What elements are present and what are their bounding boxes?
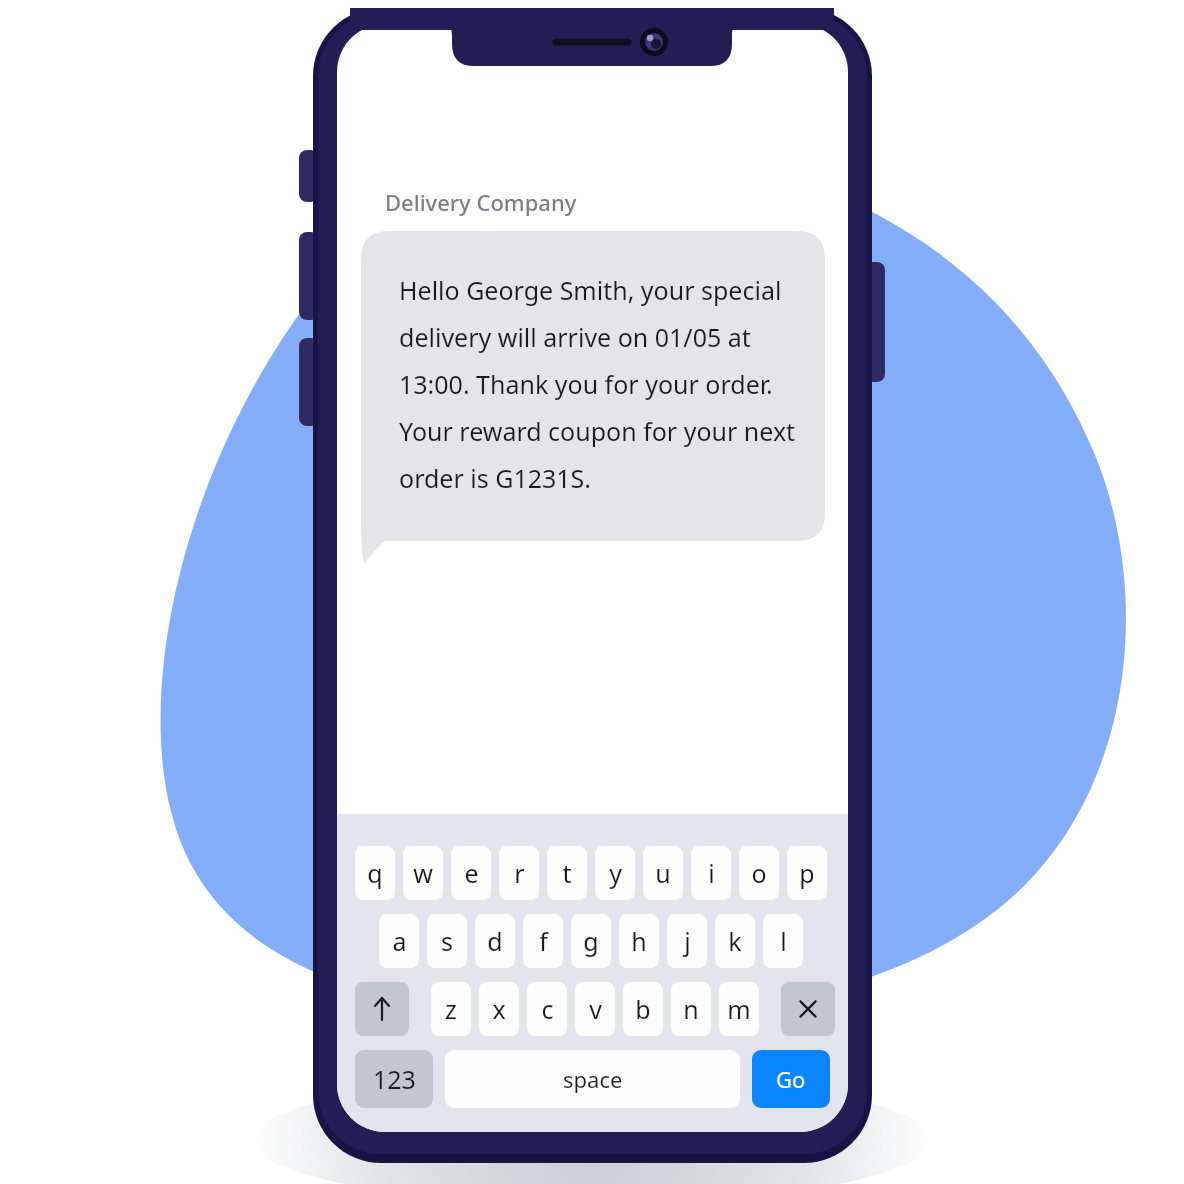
staticText: m <box>727 992 751 1026</box>
button[interactable]: o <box>739 846 779 900</box>
button[interactable]: e <box>451 846 491 900</box>
button[interactable]: s <box>427 914 467 968</box>
staticText: b <box>635 992 651 1026</box>
button[interactable]: v <box>575 982 615 1036</box>
button[interactable]: b <box>623 982 663 1036</box>
staticText: u <box>655 856 671 890</box>
button[interactable]: g <box>571 914 611 968</box>
staticText: c <box>541 992 554 1026</box>
staticText: Hello George Smith, your special deliver… <box>399 273 801 495</box>
staticText: s <box>441 924 453 958</box>
button[interactable]: q <box>355 846 395 900</box>
staticText: i <box>708 856 715 890</box>
button[interactable]: k <box>715 914 755 968</box>
button[interactable]: x <box>479 982 519 1036</box>
staticText: j <box>684 924 691 958</box>
button[interactable]: f <box>523 914 563 968</box>
staticText: l <box>780 924 787 958</box>
button[interactable]: l <box>763 914 803 968</box>
button[interactable]: 123 <box>355 1050 433 1108</box>
staticText: v <box>589 992 602 1026</box>
button[interactable]: w <box>403 846 443 900</box>
staticText: 123 <box>373 1062 416 1096</box>
staticText: t <box>562 856 572 890</box>
staticText: d <box>487 924 503 958</box>
button[interactable]: z <box>431 982 471 1036</box>
staticText: e <box>464 856 479 890</box>
button[interactable]: Hello George Smith, your special deliver… <box>361 231 825 563</box>
button[interactable]: Shift <box>355 982 409 1036</box>
button[interactable]: y <box>595 846 635 900</box>
button[interactable]: Backspace <box>781 982 835 1036</box>
staticText: q <box>367 856 383 890</box>
staticText: space <box>563 1064 623 1094</box>
staticText: a <box>392 924 407 958</box>
staticText: o <box>751 856 767 890</box>
staticText: k <box>728 924 742 958</box>
button[interactable]: n <box>671 982 711 1036</box>
button[interactable]: m <box>719 982 759 1036</box>
button[interactable]: Go <box>752 1050 830 1108</box>
button[interactable]: t <box>547 846 587 900</box>
button[interactable]: c <box>527 982 567 1036</box>
button[interactable]: r <box>499 846 539 900</box>
button[interactable]: j <box>667 914 707 968</box>
button[interactable]: u <box>643 846 683 900</box>
staticText: Delivery Company <box>385 187 577 217</box>
staticText: x <box>492 992 506 1026</box>
staticText: h <box>631 924 647 958</box>
staticText: w <box>413 856 433 890</box>
staticText: g <box>583 924 599 958</box>
staticText: Go <box>776 1064 806 1094</box>
staticText: r <box>514 856 525 890</box>
button[interactable]: a <box>379 914 419 968</box>
button[interactable]: h <box>619 914 659 968</box>
button[interactable]: d <box>475 914 515 968</box>
staticText: n <box>683 992 699 1026</box>
staticText: p <box>799 856 815 890</box>
button[interactable]: space <box>445 1050 740 1108</box>
staticText: z <box>445 992 457 1026</box>
button[interactable]: p <box>787 846 827 900</box>
staticText: f <box>539 924 548 958</box>
staticText: y <box>609 856 622 890</box>
button[interactable]: i <box>691 846 731 900</box>
